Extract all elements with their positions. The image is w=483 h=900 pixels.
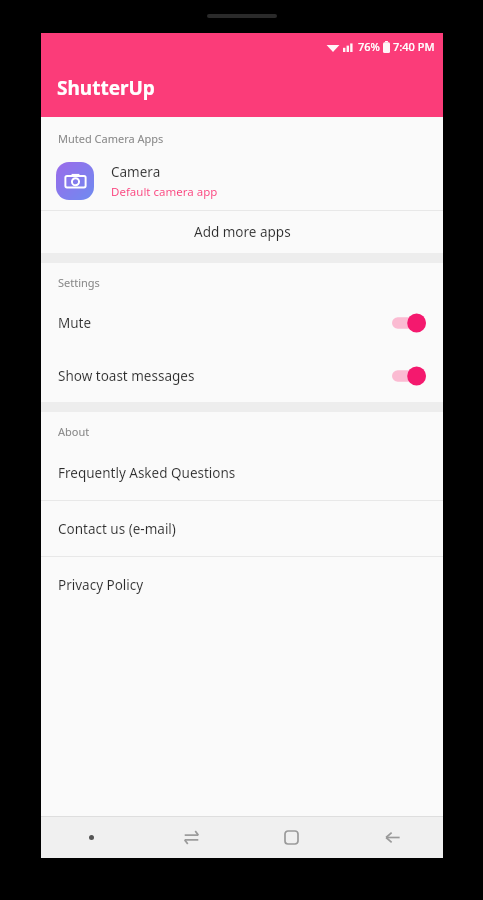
button[interactable]: Menu [41, 816, 141, 858]
button[interactable]: Add more apps [41, 211, 443, 253]
staticText: Default camera app [111, 184, 218, 200]
staticText: Contact us (e-mail) [58, 520, 176, 538]
button[interactable]: Frequently Asked Questions [41, 445, 443, 500]
button[interactable]: Contact us (e-mail) [41, 501, 443, 556]
staticText: Settings [58, 275, 100, 290]
staticText: Privacy Policy [58, 576, 144, 594]
staticText: 76% [358, 39, 380, 54]
staticText: Show toast messages [58, 367, 392, 385]
staticText: About [58, 424, 90, 439]
staticText: ShutterUp [57, 75, 155, 101]
button[interactable]: Camera [41, 152, 443, 210]
staticText: Muted Camera Apps [58, 131, 164, 146]
staticText: 7:40 PM [393, 39, 435, 54]
button[interactable]: Privacy Policy [41, 557, 443, 612]
staticText: Frequently Asked Questions [58, 464, 236, 482]
staticText: Add more apps [194, 223, 291, 241]
button[interactable]: Show toast messages [41, 349, 443, 402]
button[interactable]: Recent apps [241, 816, 342, 858]
button[interactable]: Mute [41, 296, 443, 349]
button[interactable]: Back [342, 816, 443, 858]
staticText: Camera [111, 163, 161, 181]
button[interactable]: Switch apps [141, 816, 241, 858]
staticText: Mute [58, 314, 392, 332]
